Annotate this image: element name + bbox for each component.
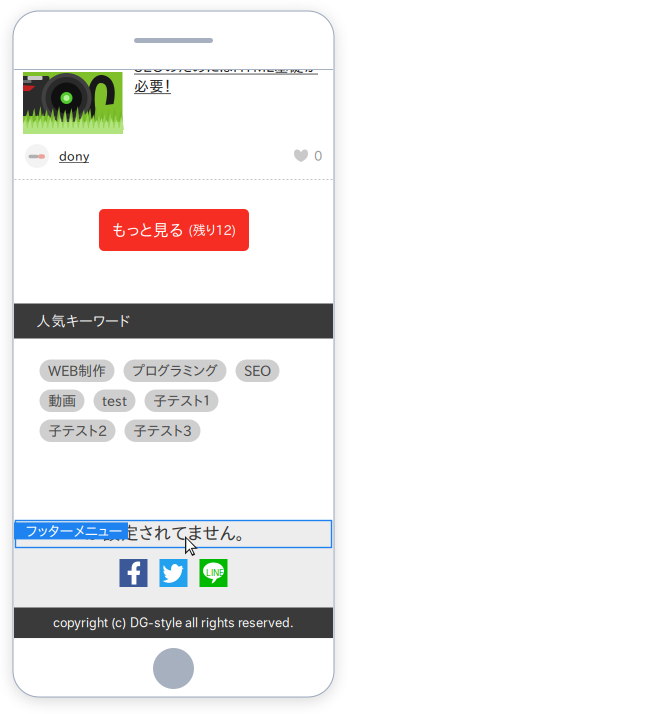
staticText: 動画 xyxy=(48,394,76,408)
button[interactable]: WEB制作 xyxy=(39,359,114,382)
staticText: SEOのためにはHTML基礎が xyxy=(134,59,318,74)
button[interactable]: SEO xyxy=(235,359,279,382)
button[interactable]: 子テスト3 xyxy=(124,419,200,442)
staticText: 人気キーワード xyxy=(36,314,130,328)
staticText: もっと見る xyxy=(112,222,183,238)
staticText: が設定されてません。 xyxy=(84,524,244,542)
button[interactable]: 子テスト2 xyxy=(39,419,115,442)
staticText: copyright (c) DG-style all rights reserv… xyxy=(53,615,294,630)
button[interactable]: test xyxy=(93,389,135,412)
staticText: プログラミング xyxy=(132,364,218,378)
staticText: フッターメニュー xyxy=(25,524,122,538)
button[interactable]: Share on LINE xyxy=(199,559,227,587)
button[interactable]: Share on Twitter xyxy=(159,559,187,587)
button[interactable]: Share on Facebook xyxy=(119,559,147,587)
staticText: (残り12) xyxy=(188,223,235,237)
staticText: test xyxy=(102,394,127,408)
staticText: 子テスト3 xyxy=(133,424,192,438)
staticText: 必要！ xyxy=(134,79,171,93)
button[interactable]: 子テスト１ xyxy=(144,389,218,412)
staticText: 子テスト2 xyxy=(48,424,107,438)
button[interactable]: 動画 xyxy=(39,389,84,412)
staticText: 0 xyxy=(314,148,322,164)
staticText: 子テスト１ xyxy=(153,394,210,408)
staticText: SEO xyxy=(244,364,271,378)
button[interactable]: が設定されてません。 xyxy=(15,520,331,547)
button[interactable]: dony xyxy=(49,150,89,162)
staticText: dony xyxy=(59,150,89,162)
button[interactable]: プログラミング xyxy=(123,359,226,382)
staticText: WEB制作 xyxy=(48,364,106,378)
button[interactable]: もっと見る xyxy=(99,209,249,251)
staticText: LINE xyxy=(206,568,224,578)
